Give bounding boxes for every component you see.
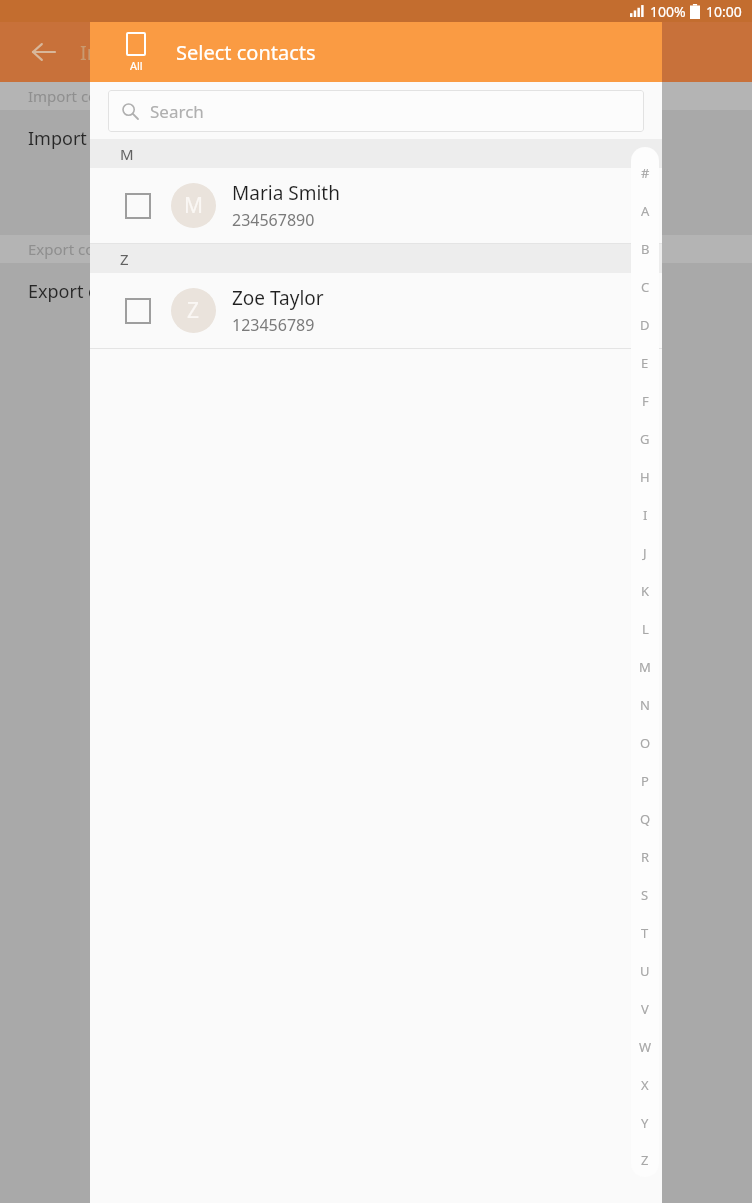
button[interactable]: Back [20, 28, 68, 76]
staticText: L [642, 620, 649, 638]
staticText: P [641, 772, 649, 790]
staticText: Import vCard [28, 126, 141, 151]
staticText: B [641, 240, 650, 258]
staticText: Y [641, 1114, 649, 1132]
staticText: 10:00 [706, 2, 742, 21]
staticText: O [640, 734, 651, 752]
staticText: C [641, 278, 650, 296]
staticText: Export contacts [28, 239, 138, 259]
staticText: 234567890 [232, 209, 315, 231]
button[interactable]: Export contacts [0, 263, 752, 319]
staticText: S [641, 886, 649, 904]
staticText: Select contacts [176, 39, 316, 66]
staticText: Z [120, 249, 129, 269]
staticText: Import contacts [28, 86, 141, 106]
staticText: Import [80, 39, 146, 66]
staticText: Z [641, 1151, 649, 1169]
staticText: Export contacts [28, 279, 160, 304]
staticText: N [640, 696, 650, 714]
staticText: 123456789 [232, 314, 315, 336]
staticText: X [641, 1076, 649, 1094]
staticText: J [643, 544, 647, 562]
staticText: 100% [650, 2, 686, 21]
staticText: F [642, 392, 649, 410]
staticText: D [640, 316, 650, 334]
staticText: V [641, 1000, 649, 1018]
staticText: M [639, 658, 651, 676]
staticText: Search [150, 100, 204, 123]
staticText: Z [187, 296, 200, 325]
staticText: G [640, 430, 650, 448]
staticText: A [641, 202, 650, 220]
staticText: All [130, 58, 143, 73]
staticText: I [643, 506, 648, 524]
button[interactable]: Select all [114, 28, 158, 77]
button[interactable]: Z [90, 273, 662, 348]
button[interactable]: M [90, 168, 662, 243]
staticText: W [639, 1038, 652, 1056]
staticText: # [641, 164, 650, 182]
staticText: M [184, 191, 204, 220]
button[interactable]: Alphabet index [631, 147, 659, 1177]
staticText: Q [640, 810, 651, 828]
staticText: U [640, 962, 650, 980]
staticText: K [641, 582, 650, 600]
staticText: Maria Smith [232, 180, 340, 206]
staticText: Zoe Taylor [232, 285, 324, 311]
button[interactable]: Import vCard [0, 110, 752, 166]
staticText: E [641, 354, 649, 372]
staticText: M [120, 144, 134, 164]
staticText: H [640, 468, 650, 486]
staticText: T [641, 924, 649, 942]
staticText: R [641, 848, 650, 866]
button[interactable]: Search [108, 90, 644, 132]
